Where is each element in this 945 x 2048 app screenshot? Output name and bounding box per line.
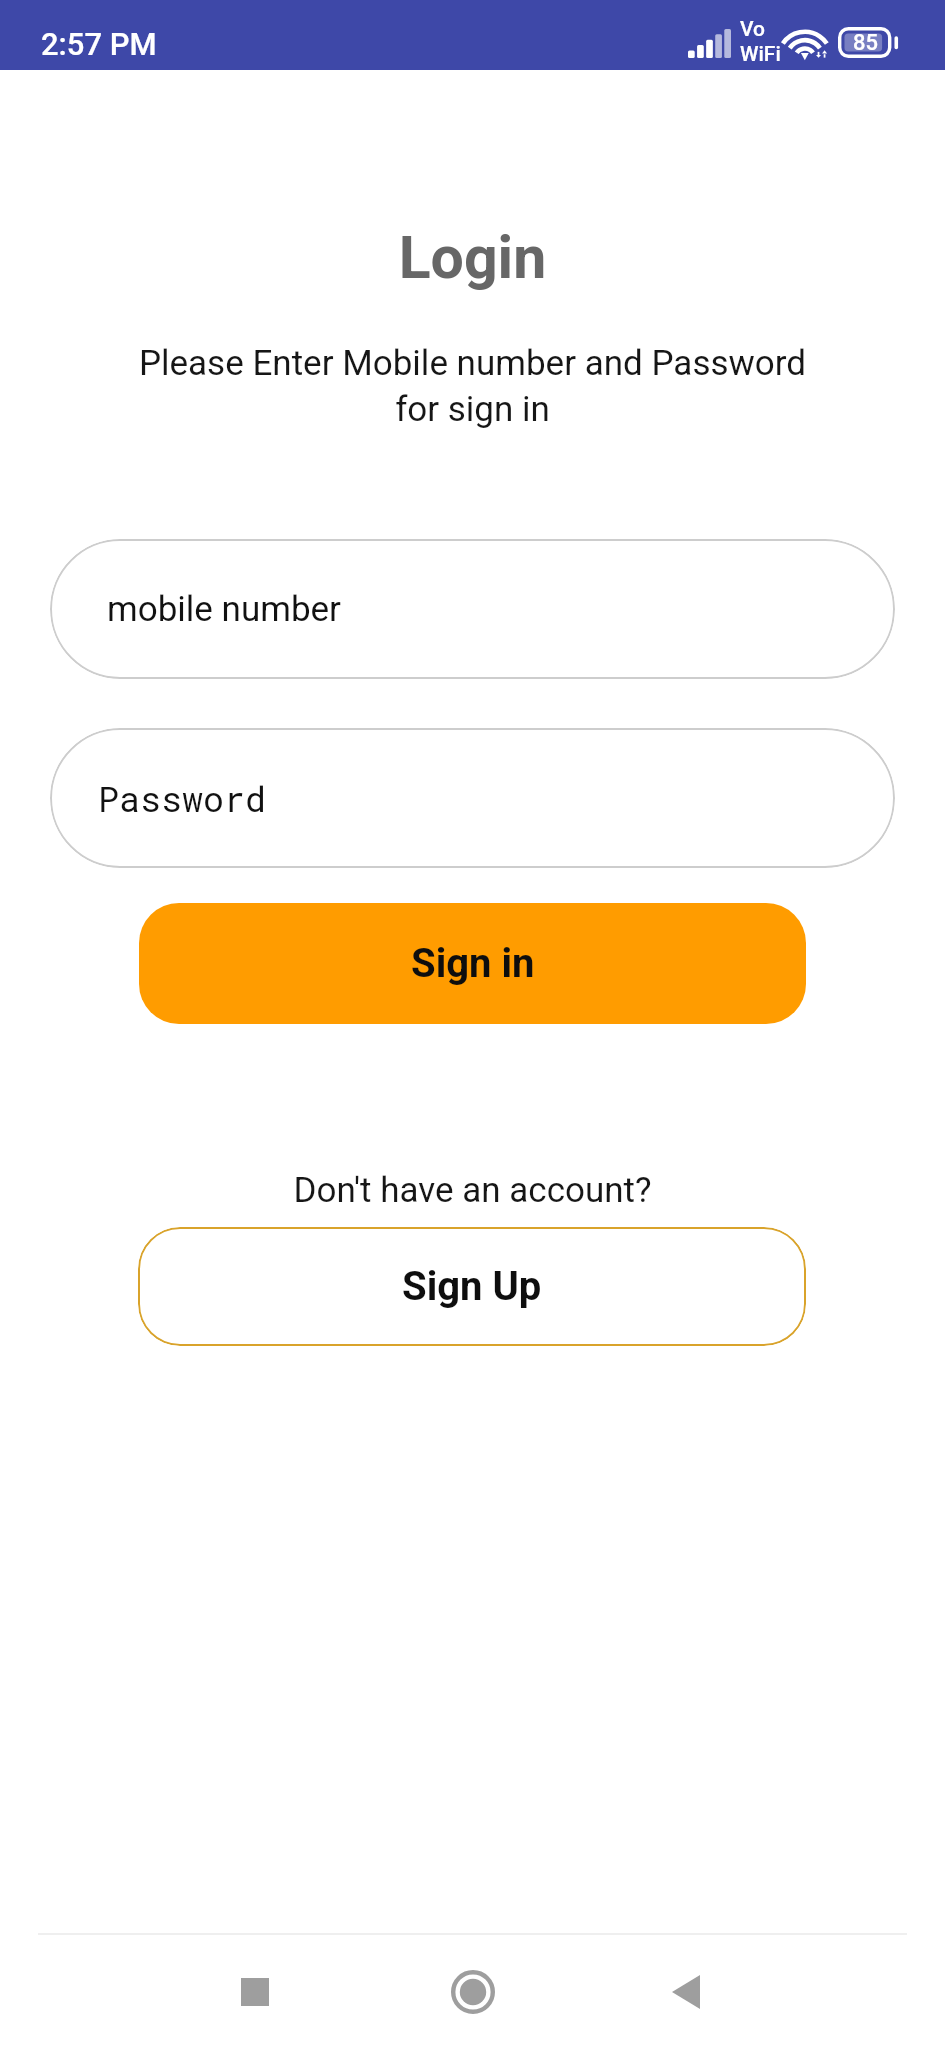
staticText: 2:57 PM xyxy=(41,26,157,62)
button[interactable]: Password xyxy=(50,728,895,868)
staticText: Sign in xyxy=(411,940,535,987)
staticText: Sign Up xyxy=(402,1263,542,1310)
staticText: Vo xyxy=(740,17,765,42)
button[interactable]: Sign Up xyxy=(138,1227,806,1346)
staticText: Don't have an account? xyxy=(0,1170,945,1211)
button[interactable]: mobile number xyxy=(50,539,895,679)
button[interactable]: Back xyxy=(582,1935,790,2048)
button[interactable]: Recent apps xyxy=(146,1935,364,2048)
staticText: Password xyxy=(98,775,267,821)
staticText: WiFi xyxy=(740,42,781,67)
staticText: mobile number xyxy=(107,589,341,630)
button[interactable]: Sign in xyxy=(139,903,806,1024)
button[interactable]: Home xyxy=(364,1935,582,2048)
staticText: 85 xyxy=(853,30,879,56)
staticText: Please Enter Mobile number and Password … xyxy=(0,343,945,430)
staticText: Login xyxy=(0,223,945,292)
